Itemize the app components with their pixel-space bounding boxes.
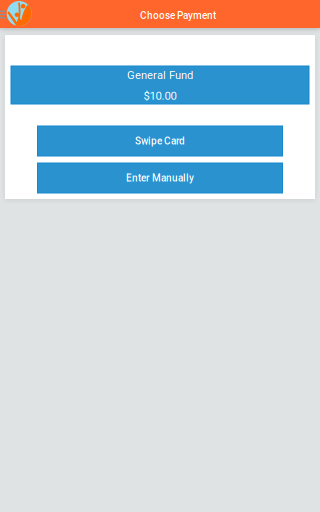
- button[interactable]: Swipe Card: [37, 126, 282, 156]
- staticText: Enter Manually: [126, 172, 194, 184]
- button[interactable]: Enter Manually: [37, 163, 282, 193]
- staticText: Swipe Card: [135, 135, 185, 147]
- button[interactable]: Menu: [0, 0, 33, 28]
- staticText: $10.00: [143, 89, 176, 102]
- staticText: Choose Payment: [140, 10, 216, 21]
- staticText: General Fund: [127, 68, 193, 82]
